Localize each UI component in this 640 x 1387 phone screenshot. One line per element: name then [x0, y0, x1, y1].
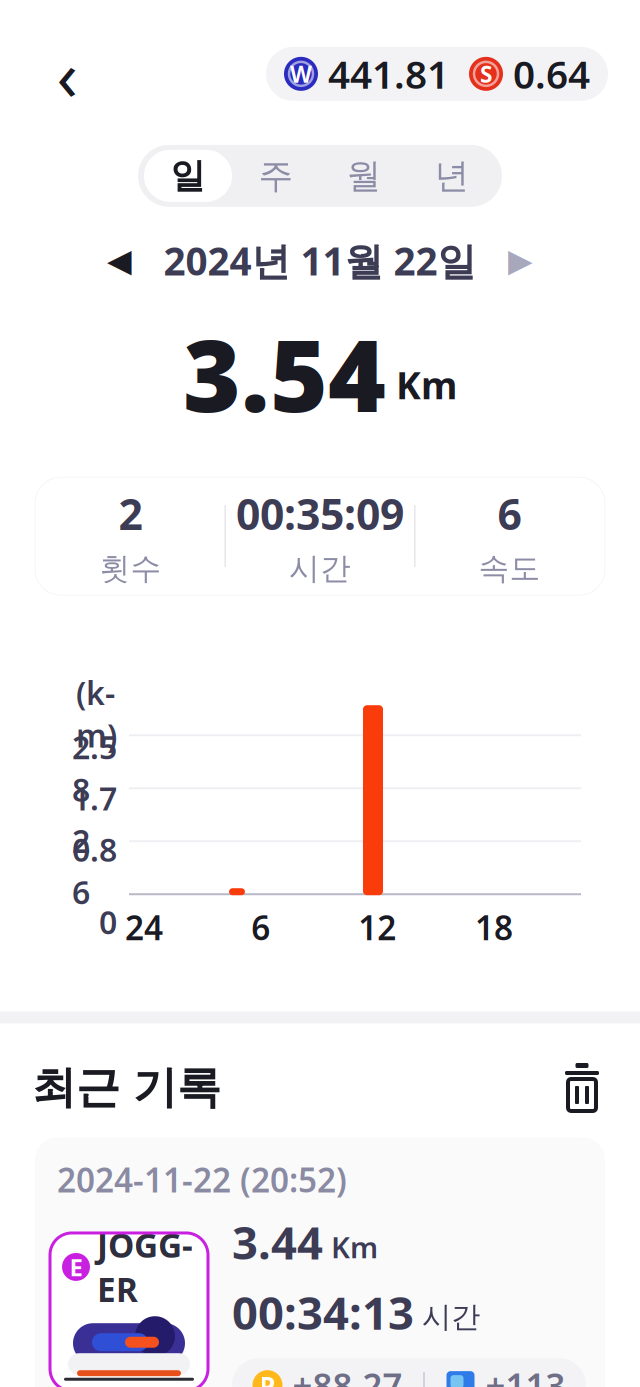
staticText: 2.58 [72, 726, 117, 811]
button[interactable]: W [266, 47, 608, 101]
button[interactable]: 년 [408, 150, 496, 202]
staticText: JOGGER [97, 1223, 193, 1311]
staticText: ‹ [56, 28, 77, 120]
staticText: Km [396, 360, 457, 409]
staticText: ◀ [107, 242, 132, 279]
staticText: 18 [475, 905, 513, 949]
staticText: E [69, 1251, 82, 1283]
staticText: 441.81 [328, 48, 449, 99]
staticText: +113 [485, 1362, 565, 1387]
staticText: Km [331, 1227, 378, 1266]
staticText: 년 [434, 155, 469, 197]
staticText: 24 [125, 905, 163, 949]
staticText: +88.27 [292, 1362, 402, 1387]
button[interactable]: 월 [320, 150, 408, 202]
button[interactable]: 일 [144, 150, 232, 202]
button[interactable]: Next day [498, 238, 542, 282]
staticText: 0.86 [72, 828, 117, 913]
staticText: 3.54 [183, 308, 386, 439]
staticText: S [480, 59, 492, 89]
staticText: P [259, 1368, 275, 1387]
button[interactable]: Delete records [554, 1059, 610, 1115]
staticText: 0.64 [513, 48, 590, 99]
staticText: 2 [118, 485, 142, 542]
staticText: 6 [251, 905, 270, 949]
staticText: ▶ [508, 242, 533, 279]
button[interactable]: Back [36, 43, 98, 105]
button[interactable]: Previous day [97, 238, 141, 282]
staticText: 횟수 [99, 550, 161, 587]
staticText: 0 [99, 901, 117, 943]
staticText: 6 [497, 485, 521, 542]
staticText: 일 [170, 155, 205, 197]
staticText: 시간 [289, 550, 351, 587]
staticText: 12 [358, 905, 396, 949]
staticText: (km) [76, 671, 117, 756]
staticText: 2024년 11월 22일 [163, 235, 476, 286]
staticText: 주 [258, 155, 293, 197]
staticText: 최근 기록 [32, 1060, 221, 1114]
button[interactable]: 2024-11-22 (20:52) [35, 1137, 605, 1387]
staticText: 속도 [478, 550, 540, 587]
staticText: 시간 [422, 1299, 480, 1335]
staticText: 00:34:13 [232, 1282, 414, 1342]
staticText: 00:35:09 [236, 485, 404, 542]
staticText: W [290, 59, 312, 89]
staticText: 2024-11-22 (20:52) [57, 1157, 347, 1202]
staticText: 1.72 [72, 777, 117, 862]
staticText: 월 [346, 155, 381, 197]
staticText: 3.44 [232, 1212, 323, 1272]
button[interactable]: 주 [232, 150, 320, 202]
